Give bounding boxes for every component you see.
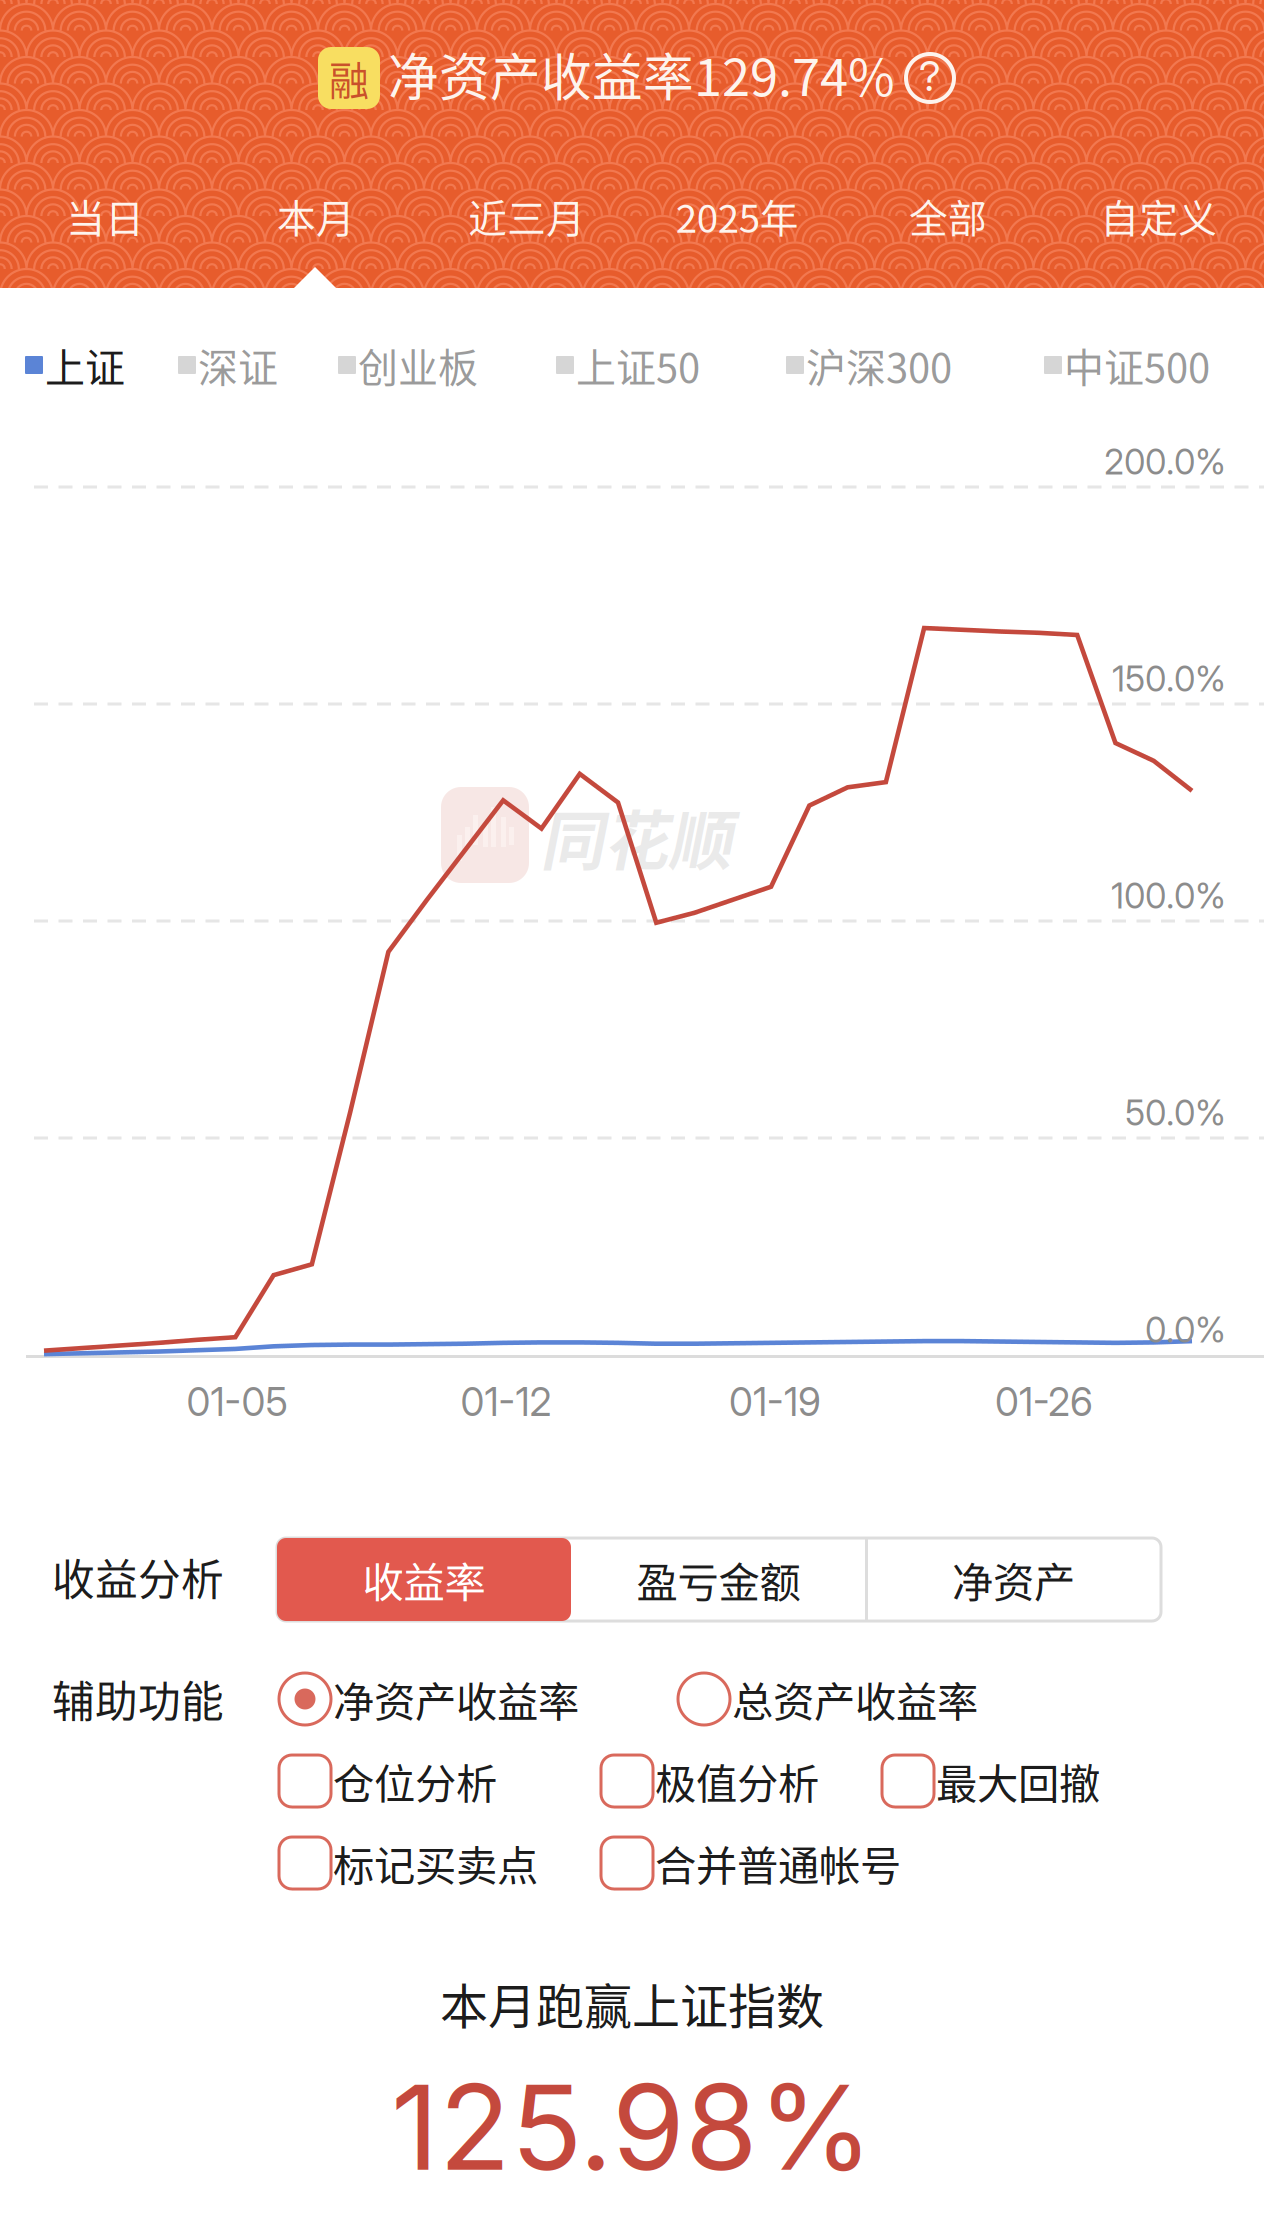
staticText: 100.0% xyxy=(1111,875,1226,917)
staticText: 收益率 xyxy=(362,1550,485,1609)
staticText: 0.0% xyxy=(1145,1309,1226,1351)
staticText: 中证500 xyxy=(1064,336,1210,394)
staticText: 本月跑赢上证指数 xyxy=(440,1968,824,2038)
staticText: 50.0% xyxy=(1125,1092,1226,1134)
staticText: 收益分析 xyxy=(52,1546,224,1608)
staticText: 200.0% xyxy=(1104,441,1226,483)
staticText: 净资产 xyxy=(952,1550,1075,1609)
button[interactable]: 上证50 xyxy=(556,340,734,390)
staticText: 2025年 xyxy=(676,188,799,244)
staticText: 极值分析 xyxy=(655,1751,819,1811)
staticText: 150.0% xyxy=(1112,658,1226,700)
button[interactable]: 自定义 xyxy=(1053,178,1264,254)
button[interactable]: 总资产收益率 xyxy=(676,1671,1032,1727)
button[interactable]: 盈亏金额 xyxy=(571,1538,866,1621)
staticText: 上证50 xyxy=(576,336,700,394)
staticText: 最大回撤 xyxy=(936,1751,1100,1811)
staticText: 净资产收益率129.74% xyxy=(388,37,895,111)
button[interactable]: 当日 xyxy=(0,178,211,254)
button[interactable]: 净资产 xyxy=(866,1538,1161,1621)
staticText: 全部 xyxy=(909,188,987,244)
button[interactable]: 本月 xyxy=(211,178,421,254)
button[interactable]: 深证 xyxy=(178,340,303,390)
staticText: 融 xyxy=(329,49,369,107)
staticText: 辅助功能 xyxy=(52,1668,224,1730)
staticText: 创业板 xyxy=(358,336,478,394)
button[interactable]: 近三月 xyxy=(421,178,632,254)
button[interactable]: 创业板 xyxy=(338,340,508,390)
staticText: 01-26 xyxy=(995,1379,1093,1425)
button[interactable]: 说明 xyxy=(904,52,956,104)
button[interactable]: 合并普通帐号 xyxy=(599,1835,975,1891)
staticText: 上证 xyxy=(45,336,125,394)
button[interactable]: 极值分析 xyxy=(599,1753,885,1809)
staticText: 自定义 xyxy=(1100,188,1217,244)
button[interactable]: 全部 xyxy=(843,178,1053,254)
staticText: 盈亏金额 xyxy=(636,1550,800,1609)
button[interactable]: 最大回撤 xyxy=(880,1753,1166,1809)
staticText: 125.98% xyxy=(391,2056,873,2198)
button[interactable]: 净资产收益率 xyxy=(277,1671,633,1727)
button[interactable]: 上证 xyxy=(25,340,150,390)
button[interactable]: 标记买卖点 xyxy=(277,1835,613,1891)
staticText: 本月 xyxy=(277,188,355,244)
staticText: 01-12 xyxy=(460,1379,551,1425)
button[interactable]: 仓位分析 xyxy=(277,1753,563,1809)
staticText: 仓位分析 xyxy=(333,1751,497,1811)
staticText: 深证 xyxy=(198,336,278,394)
staticText: 01-05 xyxy=(186,1379,287,1425)
staticText: 总资产收益率 xyxy=(732,1669,978,1729)
staticText: 近三月 xyxy=(468,188,585,244)
staticText: 净资产收益率 xyxy=(333,1669,579,1729)
button[interactable]: 中证500 xyxy=(1044,340,1244,390)
staticText: 01-19 xyxy=(729,1379,821,1425)
button[interactable]: 沪深300 xyxy=(786,340,986,390)
staticText: 同花顺 xyxy=(540,790,732,882)
staticText: 沪深300 xyxy=(806,336,952,394)
staticText: ? xyxy=(919,51,941,101)
staticText: 当日 xyxy=(66,188,144,244)
button[interactable]: 2025年 xyxy=(632,178,843,254)
button[interactable]: 收益率 xyxy=(277,1538,571,1621)
staticText: 合并普通帐号 xyxy=(655,1833,901,1893)
staticText: 标记买卖点 xyxy=(333,1833,538,1893)
